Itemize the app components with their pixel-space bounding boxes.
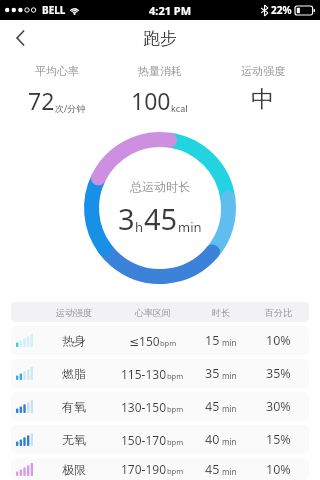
staticText: 无氧 [62, 432, 86, 447]
staticText: bpm [160, 338, 177, 348]
staticText: ≤150 [129, 333, 160, 349]
staticText: 150-170 [121, 432, 167, 448]
staticText: 35% [266, 365, 291, 382]
staticText: min [178, 218, 202, 236]
staticText: 有氧 [62, 399, 86, 414]
staticText: 次/分钟 [55, 102, 86, 114]
staticText: 百分比 [265, 307, 292, 318]
staticText: 运动强度 [56, 307, 92, 318]
staticText: 跑步 [143, 28, 177, 49]
staticText: 燃脂 [62, 366, 86, 381]
staticText: 心率区间 [135, 307, 171, 318]
staticText: 15 [205, 332, 220, 349]
button[interactable]: 热身 [11, 326, 309, 355]
button[interactable]: 无氧 [11, 425, 309, 454]
button[interactable]: 极限 [11, 458, 309, 480]
staticText: 热身 [62, 333, 86, 348]
staticText: min [222, 466, 237, 477]
staticText: 3 [118, 199, 135, 238]
staticText: 45 [144, 199, 178, 238]
button[interactable]: 燃脂 [11, 359, 309, 388]
staticText: bpm [167, 371, 184, 381]
staticText: bpm [167, 437, 184, 447]
staticText: min [222, 436, 237, 447]
staticText: BELL [42, 3, 66, 17]
staticText: kcal [171, 102, 188, 114]
staticText: 100 [131, 85, 171, 116]
staticText: h [135, 218, 144, 236]
staticText: 45 [205, 398, 220, 415]
staticText: min [222, 337, 237, 348]
staticText: 极限 [62, 462, 86, 477]
staticText: 热量消耗 [138, 64, 182, 78]
staticText: 10% [266, 332, 291, 349]
staticText: 22% [271, 3, 292, 17]
staticText: 15% [266, 431, 291, 448]
staticText: 4:21 PM [149, 3, 192, 18]
staticText: 35 [205, 365, 220, 382]
staticText: min [222, 403, 237, 414]
staticText: 总运动时长 [130, 179, 190, 194]
staticText: 170-190 [121, 461, 167, 477]
staticText: 40 [205, 431, 220, 448]
staticText: 72 [28, 85, 55, 116]
staticText: min [222, 370, 237, 381]
staticText: 115-130 [121, 366, 167, 382]
staticText: 时长 [212, 307, 230, 318]
staticText: 10% [266, 461, 291, 478]
staticText: 45 [205, 461, 220, 478]
staticText: 平均心率 [35, 64, 79, 78]
staticText: 中 [251, 85, 274, 114]
staticText: 30% [266, 398, 291, 415]
staticText: 运动强度 [241, 64, 285, 78]
staticText: 130-150 [121, 399, 167, 415]
staticText: bpm [167, 404, 184, 414]
button[interactable]: Back [0, 20, 40, 56]
staticText: bpm [167, 466, 184, 476]
button[interactable]: 有氧 [11, 392, 309, 421]
